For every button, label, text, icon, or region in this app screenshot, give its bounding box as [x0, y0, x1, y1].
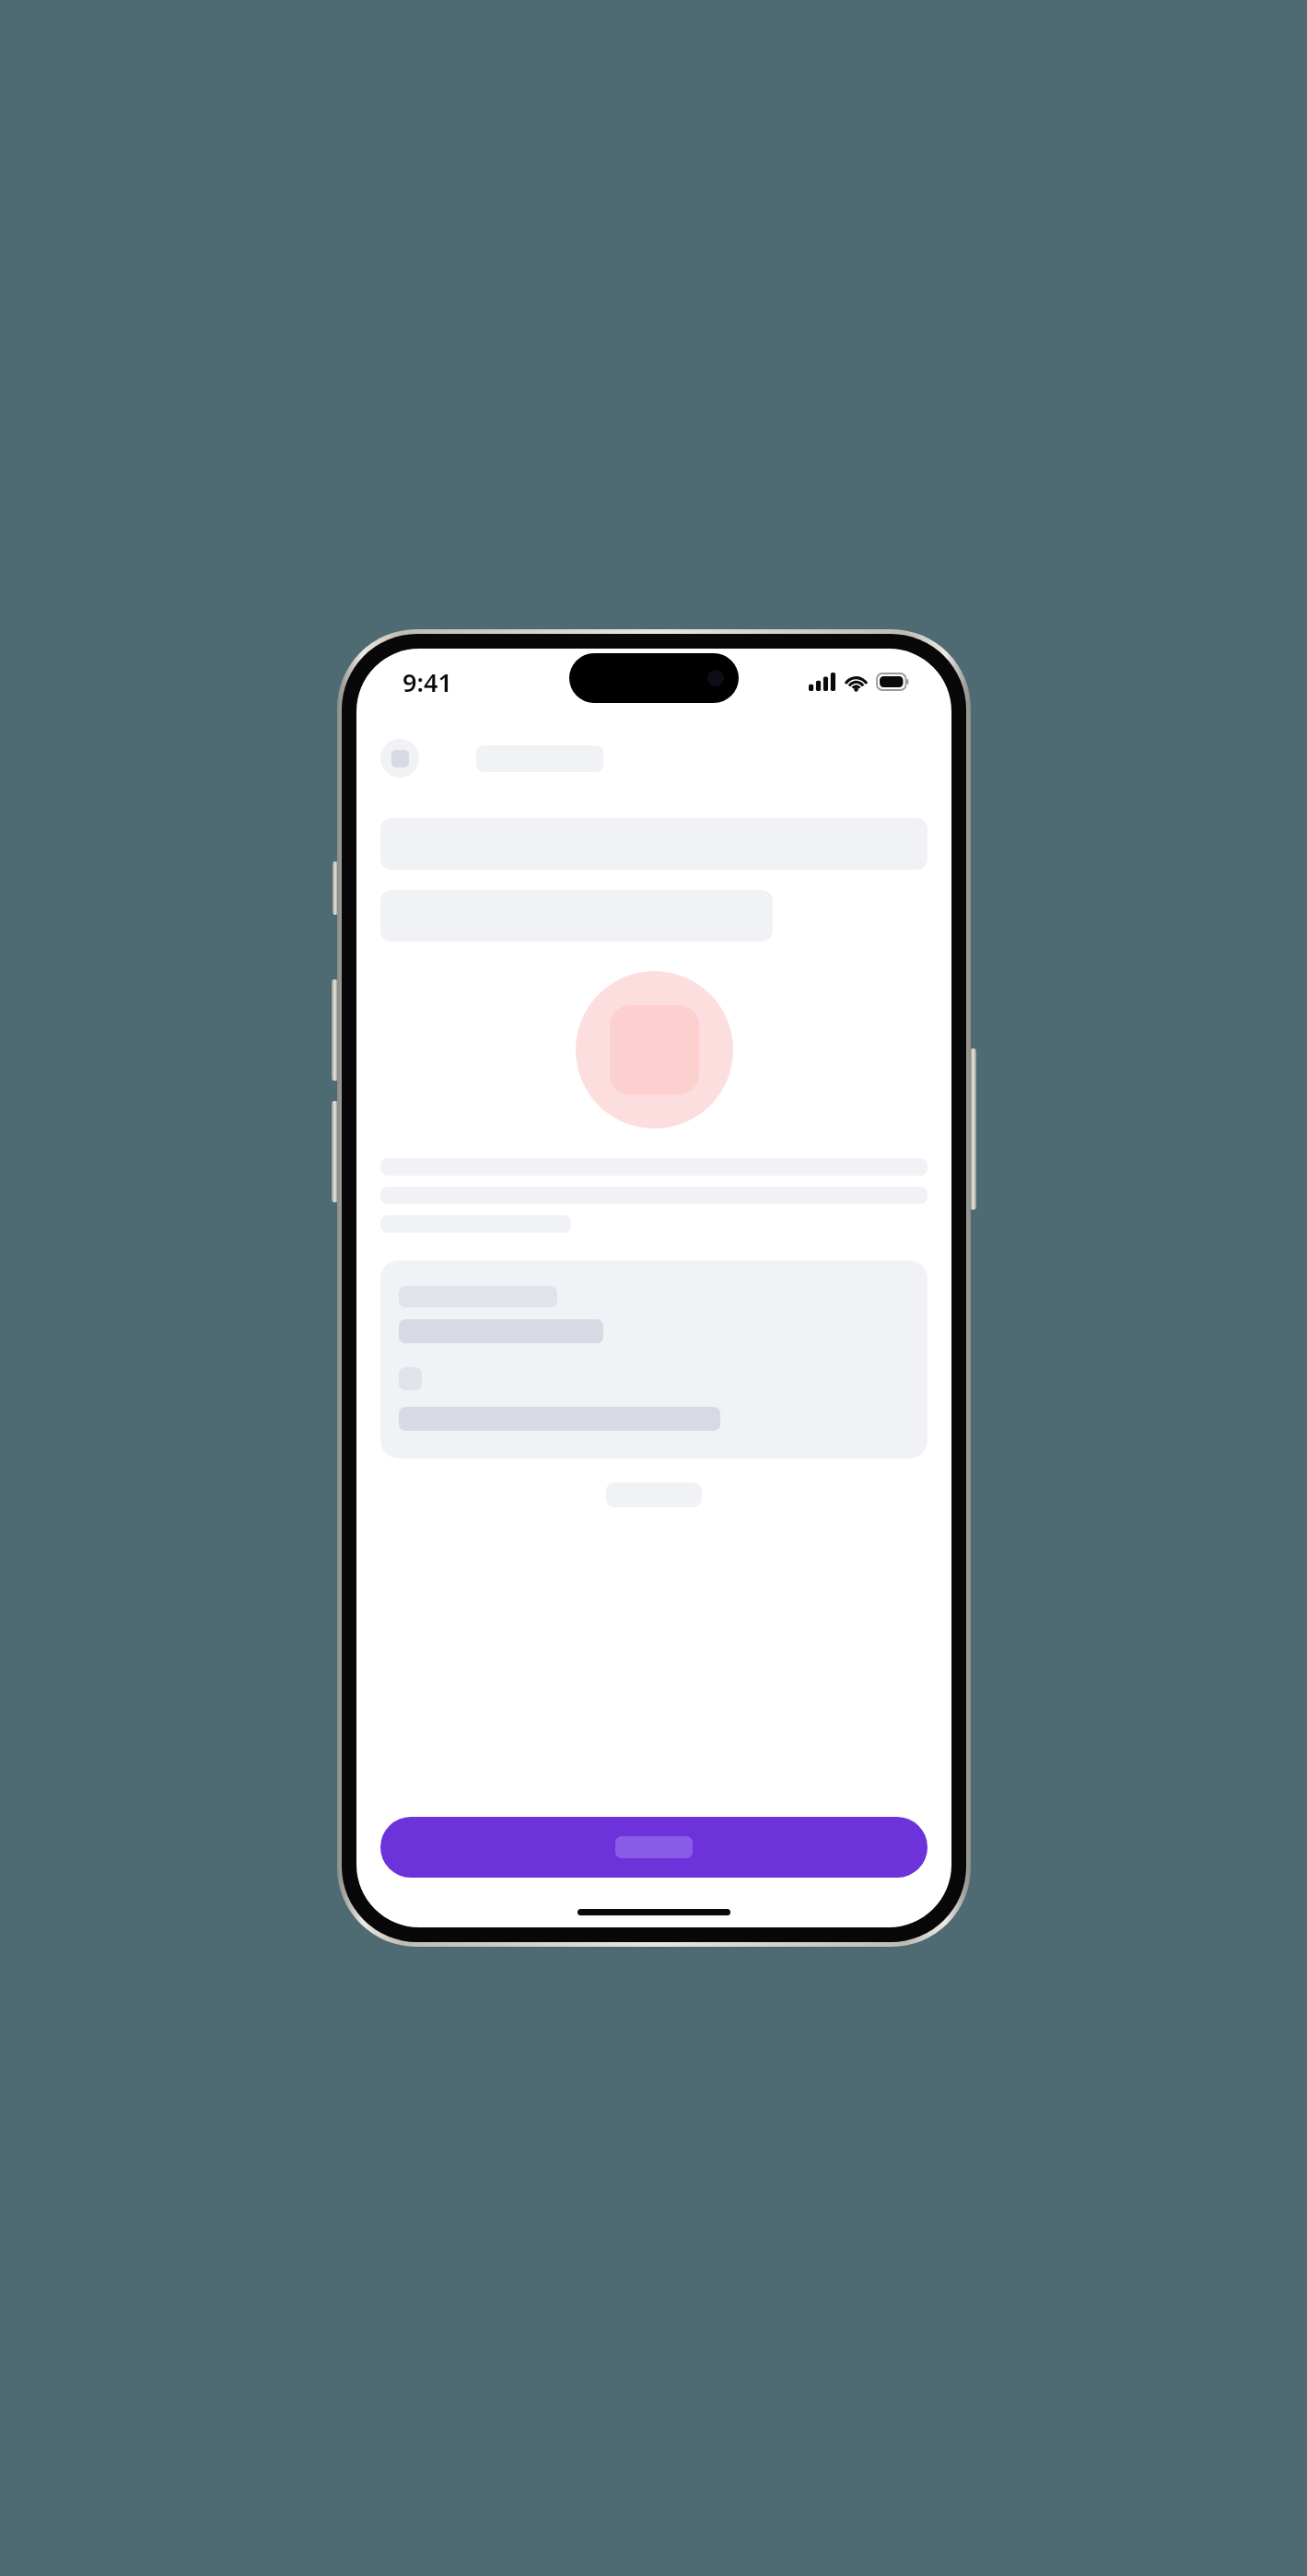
staticText: 9:41 — [403, 665, 452, 699]
button[interactable] — [380, 1260, 928, 1458]
button[interactable]: Back — [380, 739, 419, 778]
button[interactable] — [606, 1482, 702, 1507]
button[interactable] — [380, 1817, 928, 1878]
